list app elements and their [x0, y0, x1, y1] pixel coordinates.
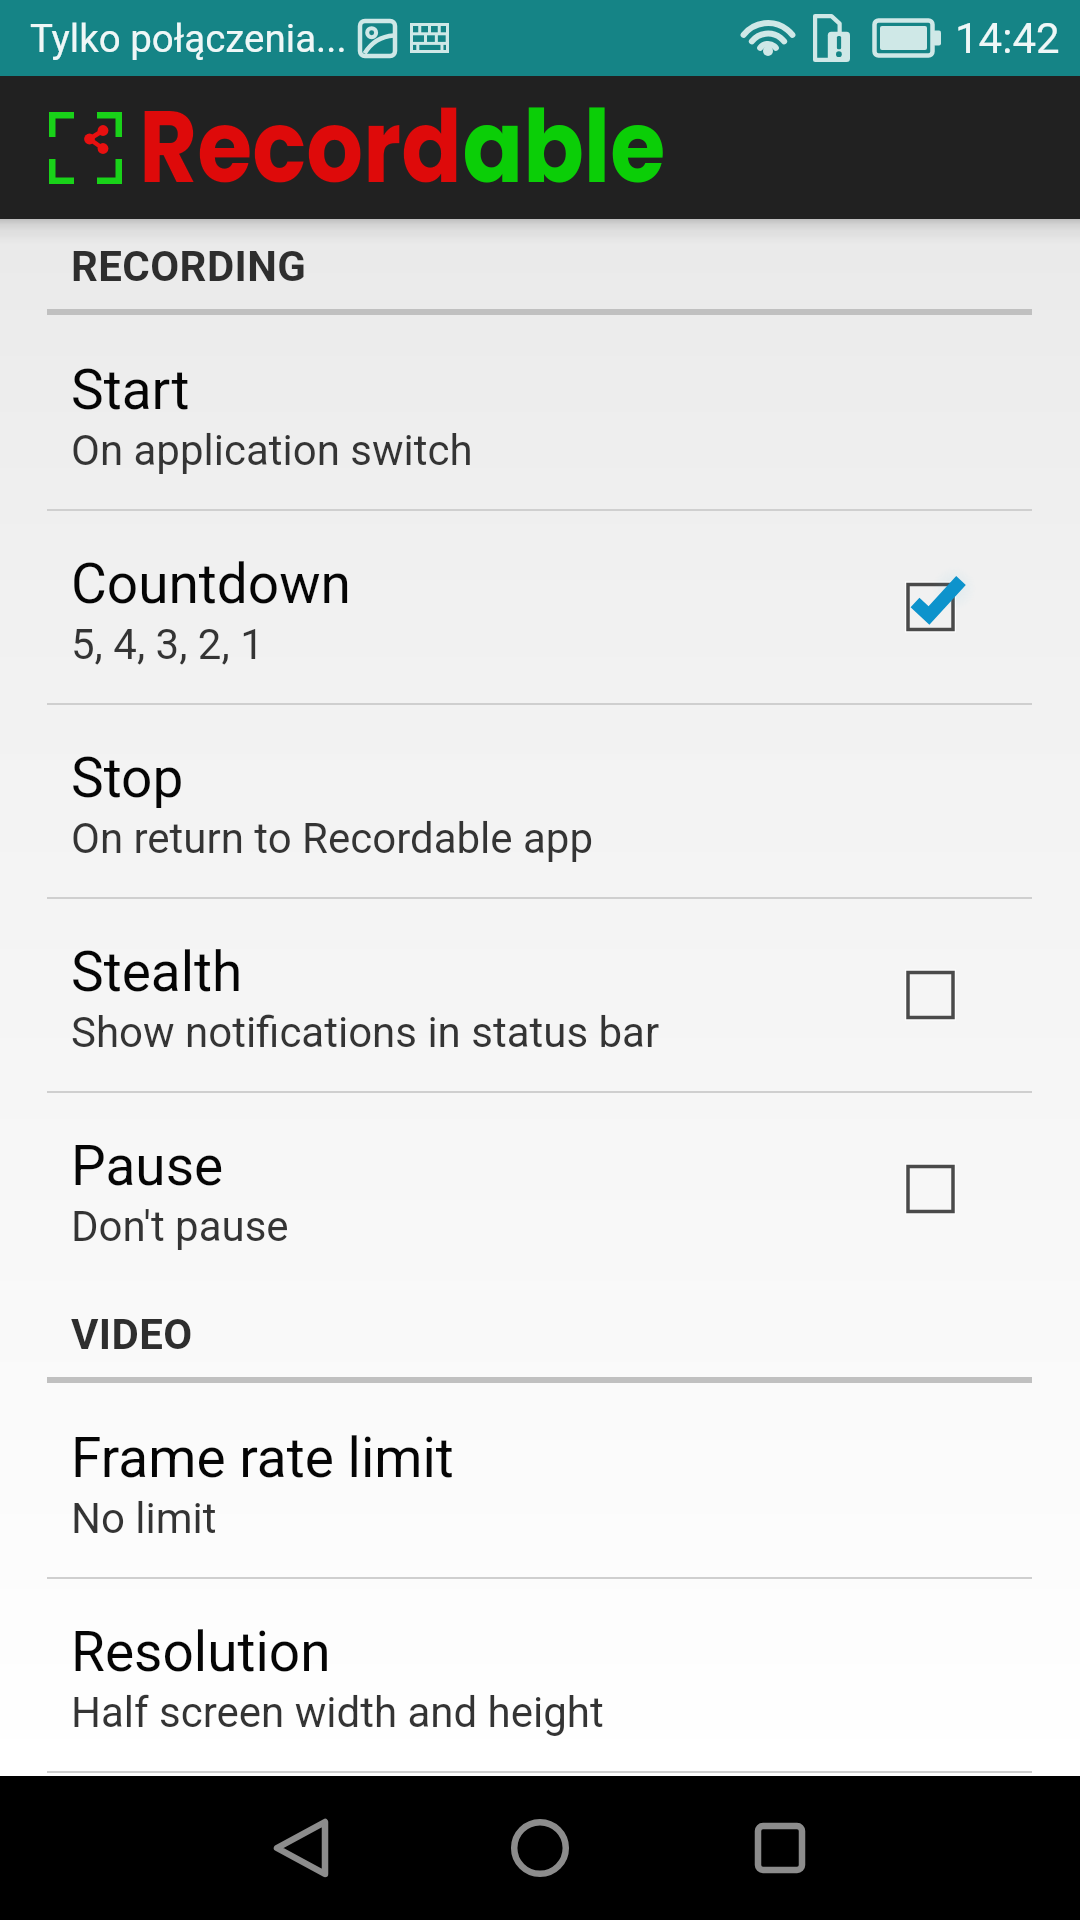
staticText: Resolution — [71, 1620, 331, 1684]
button[interactable]: Pause — [0, 1093, 1080, 1285]
staticText: Don't pause — [71, 1202, 289, 1251]
staticText: VIDEO — [71, 1310, 193, 1359]
staticText: Frame rate limit — [71, 1426, 454, 1490]
button[interactable]: Stop — [0, 705, 1080, 897]
staticText: On application switch — [71, 426, 473, 475]
staticText: Stealth — [71, 940, 243, 1004]
staticText: Record — [139, 76, 462, 217]
staticText: On return to Recordable app — [71, 814, 594, 863]
staticText: Start — [71, 358, 190, 422]
button[interactable]: Enabled, tap to disable — [882, 559, 978, 655]
staticText: Countdown — [71, 552, 351, 616]
staticText: Show notifications in status bar — [71, 1008, 660, 1057]
staticText: 14:42 — [955, 14, 1060, 63]
button[interactable]: Start — [0, 317, 1080, 509]
staticText: RECORDING — [71, 242, 307, 291]
button[interactable]: Disabled, tap to enable — [882, 947, 978, 1043]
staticText: Pause — [71, 1134, 224, 1198]
staticText: Tylko połączenia... — [30, 16, 347, 61]
button[interactable]: Home — [420, 1776, 660, 1920]
staticText: able — [462, 76, 666, 217]
button[interactable]: Back — [180, 1776, 420, 1920]
button[interactable]: Disabled, tap to enable — [882, 1141, 978, 1237]
button[interactable]: Frame rate limit — [0, 1385, 1080, 1577]
button[interactable]: Recents — [660, 1776, 900, 1920]
staticText: Stop — [71, 746, 184, 810]
staticText: No limit — [71, 1494, 217, 1543]
button[interactable]: Countdown — [0, 511, 1080, 703]
button[interactable]: Stealth — [0, 899, 1080, 1091]
staticText: Half screen width and height — [71, 1688, 604, 1737]
staticText: 5, 4, 3, 2, 1 — [71, 620, 264, 669]
button[interactable]: Resolution — [0, 1579, 1080, 1771]
